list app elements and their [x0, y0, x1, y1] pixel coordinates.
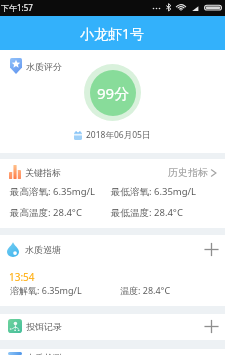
staticText: 水质巡塘 [25, 244, 61, 255]
staticText: 小龙虾1号 [80, 24, 145, 43]
staticText: 水质检测 [26, 352, 62, 355]
staticText: 最低溶氧: 6.35mg/L [111, 185, 197, 198]
staticText: 最低温度: 28.4°C [111, 206, 183, 219]
staticText: 温度: 28.4°C [120, 284, 171, 296]
staticText: 99分 [97, 83, 130, 103]
staticText: 关键指标 [25, 167, 61, 178]
staticText: 水质评分 [26, 61, 62, 72]
staticText: 投饵记录 [26, 321, 62, 332]
staticText: 历史指标 [168, 166, 208, 179]
staticText: 下午1:57 [1, 2, 33, 13]
staticText: 溶解氧: 6.35mg/L [10, 284, 120, 296]
staticText: 2018年06月05日 [86, 129, 151, 141]
staticText: 最高溶氧: 6.35mg/L [10, 185, 111, 198]
button[interactable]: 添加水质巡塘记录 [201, 239, 221, 259]
staticText: 13:54 [9, 270, 35, 284]
button[interactable]: 水质检测 [8, 352, 221, 355]
button[interactable]: 历史指标 [168, 166, 217, 179]
staticText: 最高温度: 28.4°C [10, 206, 111, 219]
button[interactable]: 添加投饵记录 [201, 316, 221, 336]
